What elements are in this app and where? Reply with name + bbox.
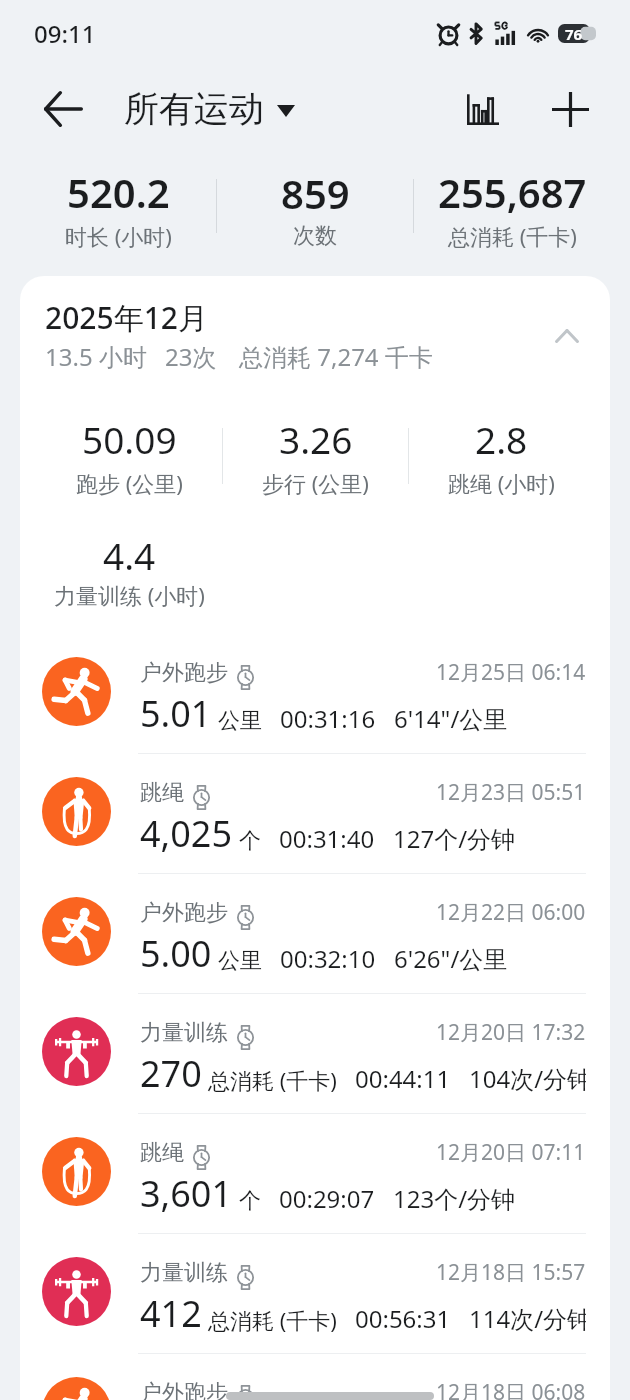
staticText: 00:56:31 <box>355 1302 451 1335</box>
staticText: 户外跑步 <box>140 899 228 927</box>
staticText: 13.5 小时 <box>45 340 147 373</box>
staticText: 5.00 <box>140 929 212 978</box>
staticText: 12月18日 15:57 <box>436 1258 586 1287</box>
staticText: 总消耗 7,274 千卡 <box>239 340 433 373</box>
staticText: 个 <box>239 827 261 855</box>
staticText: 12月20日 07:11 <box>436 1138 586 1167</box>
staticText: 412 <box>140 1289 202 1338</box>
staticText: 270 <box>140 1049 202 1098</box>
staticText: 123个/分钟 <box>393 1182 516 1215</box>
staticText: 114次/分钟 <box>469 1302 586 1335</box>
button[interactable]: 户外跑步 <box>20 1354 610 1400</box>
staticText: 步行 (公里) <box>262 468 369 498</box>
staticText: 6'14"/公里 <box>394 702 508 735</box>
staticText: 104次/分钟 <box>469 1062 586 1095</box>
staticText: 公里 <box>218 947 262 975</box>
staticText: 50.09 <box>82 414 177 464</box>
staticText: 个 <box>239 1187 261 1215</box>
staticText: 12月22日 06:00 <box>436 898 586 927</box>
staticText: 00:44:11 <box>355 1062 451 1095</box>
staticText: 力量训练 <box>140 1259 228 1287</box>
staticText: 12月25日 06:14 <box>436 658 586 687</box>
staticText: 6'26"/公里 <box>394 942 508 975</box>
staticText: 859 <box>281 166 350 220</box>
staticText: 255,687 <box>438 165 587 219</box>
staticText: 5.01 <box>140 689 212 738</box>
button[interactable]: 户外跑步 <box>20 874 610 994</box>
staticText: 3.26 <box>279 414 353 464</box>
button[interactable]: 户外跑步 <box>20 634 610 754</box>
staticText: 23次 <box>165 340 217 373</box>
staticText: 力量训练 <box>140 1019 228 1047</box>
staticText: 520.2 <box>67 165 170 219</box>
button[interactable]: Add <box>538 77 602 141</box>
staticText: 跳绳 <box>140 1139 184 1167</box>
staticText: 户外跑步 <box>140 1379 228 1400</box>
staticText: 3,601 <box>140 1169 233 1218</box>
staticText: 次数 <box>293 222 337 250</box>
staticText: 4.4 <box>103 530 156 580</box>
staticText: 09:11 <box>34 17 96 50</box>
staticText: 2.8 <box>475 414 528 464</box>
button[interactable]: 力量训练 <box>20 1234 610 1354</box>
button[interactable]: 力量训练 <box>20 994 610 1114</box>
staticText: 76 <box>565 24 583 43</box>
staticText: 127个/分钟 <box>393 822 516 855</box>
staticText: 跑步 (公里) <box>76 468 183 498</box>
staticText: 2025年12月 <box>45 297 208 338</box>
staticText: 00:31:16 <box>280 702 376 735</box>
button[interactable]: 所有运动 <box>115 81 303 137</box>
button[interactable]: 跳绳 <box>20 754 610 874</box>
staticText: 总消耗 (千卡) <box>208 1305 337 1335</box>
staticText: 跳绳 (小时) <box>448 468 555 498</box>
staticText: 总消耗 (千卡) <box>448 221 577 251</box>
staticText: 户外跑步 <box>140 659 228 687</box>
button[interactable]: Collapse <box>543 312 591 360</box>
button[interactable]: Statistics chart <box>451 77 515 141</box>
button[interactable]: Back <box>26 72 100 146</box>
staticText: 力量训练 (小时) <box>54 580 205 610</box>
staticText: 00:29:07 <box>279 1182 375 1215</box>
staticText: 时长 (小时) <box>65 221 172 251</box>
staticText: 12月20日 17:32 <box>436 1018 586 1047</box>
staticText: 所有运动 <box>124 87 264 131</box>
staticText: 跳绳 <box>140 779 184 807</box>
staticText: 公里 <box>218 707 262 735</box>
staticText: 12月23日 05:51 <box>436 778 586 807</box>
staticText: 12月18日 06:08 <box>436 1378 586 1400</box>
button[interactable]: 跳绳 <box>20 1114 610 1234</box>
staticText: 4,025 <box>140 809 233 858</box>
staticText: 00:31:40 <box>279 822 375 855</box>
staticText: 00:32:10 <box>280 942 376 975</box>
staticText: 总消耗 (千卡) <box>208 1065 337 1095</box>
